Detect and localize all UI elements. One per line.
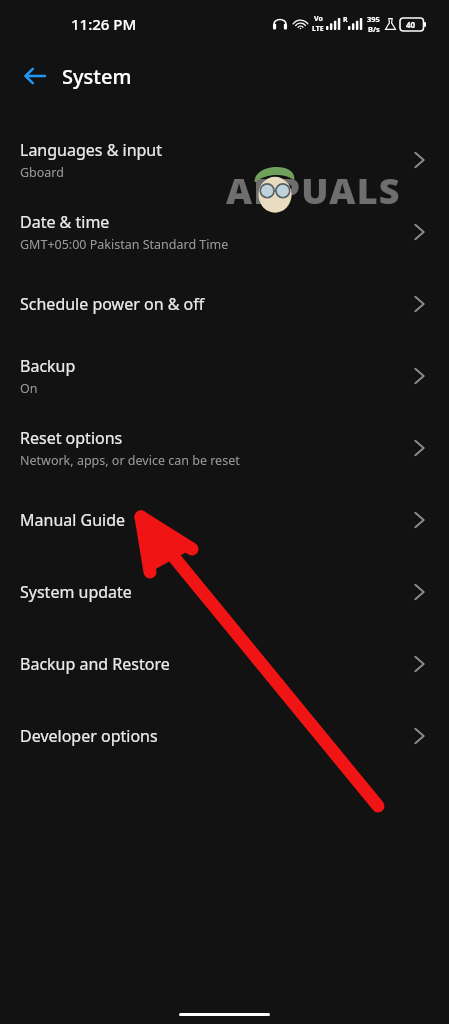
staticText: 40 xyxy=(406,19,416,30)
button[interactable]: Back xyxy=(14,55,56,97)
button[interactable]: System update xyxy=(0,556,449,628)
staticText: Network, apps, or device can be reset xyxy=(20,452,240,469)
button[interactable]: Date & time xyxy=(0,196,449,268)
staticText: B/s xyxy=(368,24,380,34)
staticText: Manual Guide xyxy=(20,509,126,531)
staticText: Languages & input xyxy=(20,139,163,161)
staticText: On xyxy=(20,380,38,397)
button[interactable]: Backup xyxy=(0,340,449,412)
staticText: APPUALS xyxy=(226,166,401,215)
staticText: Vo xyxy=(314,14,323,24)
staticText: Schedule power on & off xyxy=(20,293,205,315)
staticText: 395 xyxy=(367,14,380,24)
staticText: System update xyxy=(20,581,132,603)
staticText: Backup and Restore xyxy=(20,653,170,675)
staticText: System xyxy=(62,63,132,90)
button[interactable]: Reset options xyxy=(0,412,449,484)
button[interactable]: Manual Guide xyxy=(0,484,449,556)
staticText: LTE xyxy=(312,24,324,34)
staticText: Gboard xyxy=(20,164,64,181)
staticText: Developer options xyxy=(20,725,158,747)
button[interactable]: Backup and Restore xyxy=(0,628,449,700)
staticText: GMT+05:00 Pakistan Standard Time xyxy=(20,236,229,253)
staticText: Date & time xyxy=(20,211,110,233)
staticText: 11:26 PM xyxy=(71,14,137,34)
button[interactable]: Developer options xyxy=(0,700,449,772)
staticText: Reset options xyxy=(20,427,123,449)
staticText: Backup xyxy=(20,355,76,377)
button[interactable]: Schedule power on & off xyxy=(0,268,449,340)
staticText: R xyxy=(343,15,348,25)
button[interactable]: Languages & input xyxy=(0,124,449,196)
